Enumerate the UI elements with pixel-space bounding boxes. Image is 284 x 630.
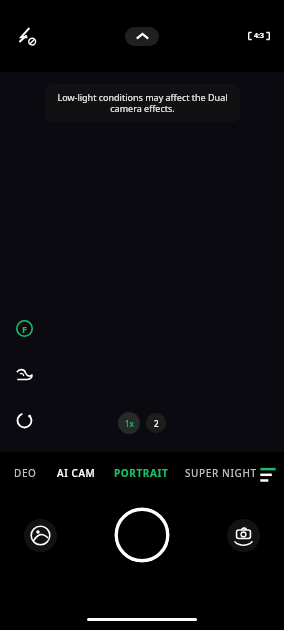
button[interactable]: Beauty effects: [10, 360, 38, 388]
staticText: 2: [154, 418, 159, 429]
staticText: SUPER NIGHT: [185, 466, 257, 480]
button[interactable]: Flash off: [10, 19, 44, 53]
staticText: Low-light conditions may affect the Dual…: [57, 91, 228, 115]
button[interactable]: AI CAM: [57, 466, 96, 480]
button[interactable]: Aspect ratio 4 by 3: [242, 19, 276, 53]
button[interactable]: PORTRAIT: [114, 466, 169, 480]
button[interactable]: Shutter: [114, 507, 170, 563]
button[interactable]: Aperture mode: [10, 314, 38, 342]
button[interactable]: SUPER NIGHT: [185, 466, 257, 480]
button[interactable]: Timer: [10, 406, 38, 434]
button[interactable]: More modes: [255, 460, 281, 486]
staticText: 4:3: [254, 31, 264, 41]
staticText: PORTRAIT: [114, 466, 169, 480]
staticText: 1x: [125, 418, 134, 429]
staticText: F: [22, 323, 27, 335]
button[interactable]: Gallery: [24, 519, 57, 552]
button[interactable]: DEO: [14, 466, 37, 480]
button[interactable]: Switch camera: [227, 519, 260, 552]
button[interactable]: 2: [146, 413, 166, 433]
button[interactable]: 1x: [118, 412, 140, 434]
staticText: AI CAM: [57, 466, 96, 480]
button[interactable]: Expand settings: [125, 27, 159, 46]
staticText: DEO: [14, 466, 37, 480]
